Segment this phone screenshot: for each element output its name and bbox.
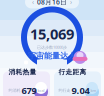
staticText: 约消耗 (8, 88, 20, 93)
staticText: 15,069 (30, 24, 74, 44)
staticText: 679 (21, 84, 36, 96)
staticText: 已达步数10000步 (37, 45, 67, 50)
staticText: ‹ (32, 0, 34, 6)
staticText: 宇宙能量达人 (28, 51, 76, 61)
staticText: 9.04 (71, 84, 89, 96)
staticText: 行走距离 (58, 68, 86, 76)
staticText: kcal (37, 88, 44, 93)
staticText: 约行走 (58, 88, 70, 93)
staticText: 08月16日 (37, 0, 67, 6)
staticText: 消耗热量 (8, 68, 36, 76)
staticText: › (70, 0, 72, 6)
button[interactable]: 消耗热量 (3, 71, 50, 96)
staticText: km (90, 88, 96, 93)
button[interactable]: 行走距离 (54, 71, 101, 96)
button[interactable]: ‹ (25, 0, 79, 8)
